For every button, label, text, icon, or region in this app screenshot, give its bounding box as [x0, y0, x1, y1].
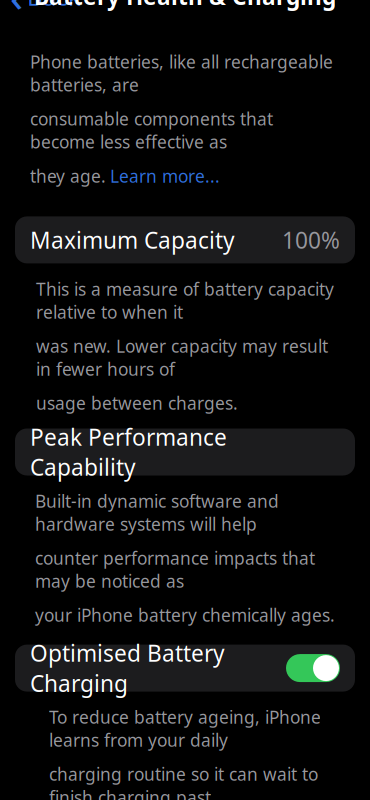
- staticText: counter performance impacts that may be …: [35, 546, 315, 592]
- staticText: consumable components that become less e…: [30, 107, 273, 153]
- staticText: Phone batteries, like all rechargeable b…: [30, 50, 333, 96]
- staticText: Battery Health & Charging: [34, 0, 336, 11]
- staticText: usage between charges.: [36, 391, 238, 414]
- staticText: Peak Performance Capability: [30, 422, 227, 482]
- button[interactable]: Optimised Battery Charging: [0, 645, 370, 692]
- button[interactable]: Learn more...: [110, 164, 220, 187]
- staticText: 100%: [282, 225, 340, 255]
- button[interactable]: ‹: [0, 0, 81, 27]
- staticText: was new. Lower capacity may result in fe…: [36, 334, 328, 380]
- staticText: This is a measure of battery capacity re…: [36, 277, 334, 323]
- button[interactable]: Peak Performance Capability: [0, 428, 370, 475]
- staticText: Optimised Battery Charging: [30, 638, 225, 698]
- staticText: charging routine so it can wait to finis…: [49, 763, 318, 800]
- staticText: Learn more...: [110, 164, 220, 187]
- staticText: your iPhone battery chemically ages.: [35, 604, 335, 627]
- staticText: Back: [27, 0, 81, 12]
- staticText: To reduce battery ageing, iPhone learns …: [49, 706, 321, 752]
- staticText: Built-in dynamic software and hardware s…: [35, 489, 279, 535]
- staticText: Maximum Capacity: [30, 225, 235, 255]
- button[interactable]: Maximum Capacity: [0, 216, 370, 263]
- staticText: ‹: [10, 0, 23, 23]
- staticText: they age.: [30, 164, 106, 187]
